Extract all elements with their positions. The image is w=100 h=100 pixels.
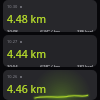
staticText: 6'46" / km [34,99,66,100]
button[interactable]: 10.30 [3,0,97,32]
staticText: 10.30 [7,4,18,9]
staticText: 384 kcal [66,99,93,100]
button[interactable]: 10.26 [3,70,97,100]
staticText: 4.46 km [7,82,46,96]
staticText: 4.48 km [7,12,46,26]
staticText: 6'44" / km [34,29,66,32]
staticText: 30:54 [7,64,34,67]
staticText: 30:08 [7,29,34,32]
staticText: 386 kcal [66,29,93,32]
staticText: 10.26 [7,74,18,79]
staticText: 4.44 km [7,47,46,61]
staticText: 6'58" / km [34,64,66,67]
staticText: 382 kcal [66,64,93,67]
staticText: 10.27 [7,39,18,44]
button[interactable]: 10.27 [3,35,97,67]
